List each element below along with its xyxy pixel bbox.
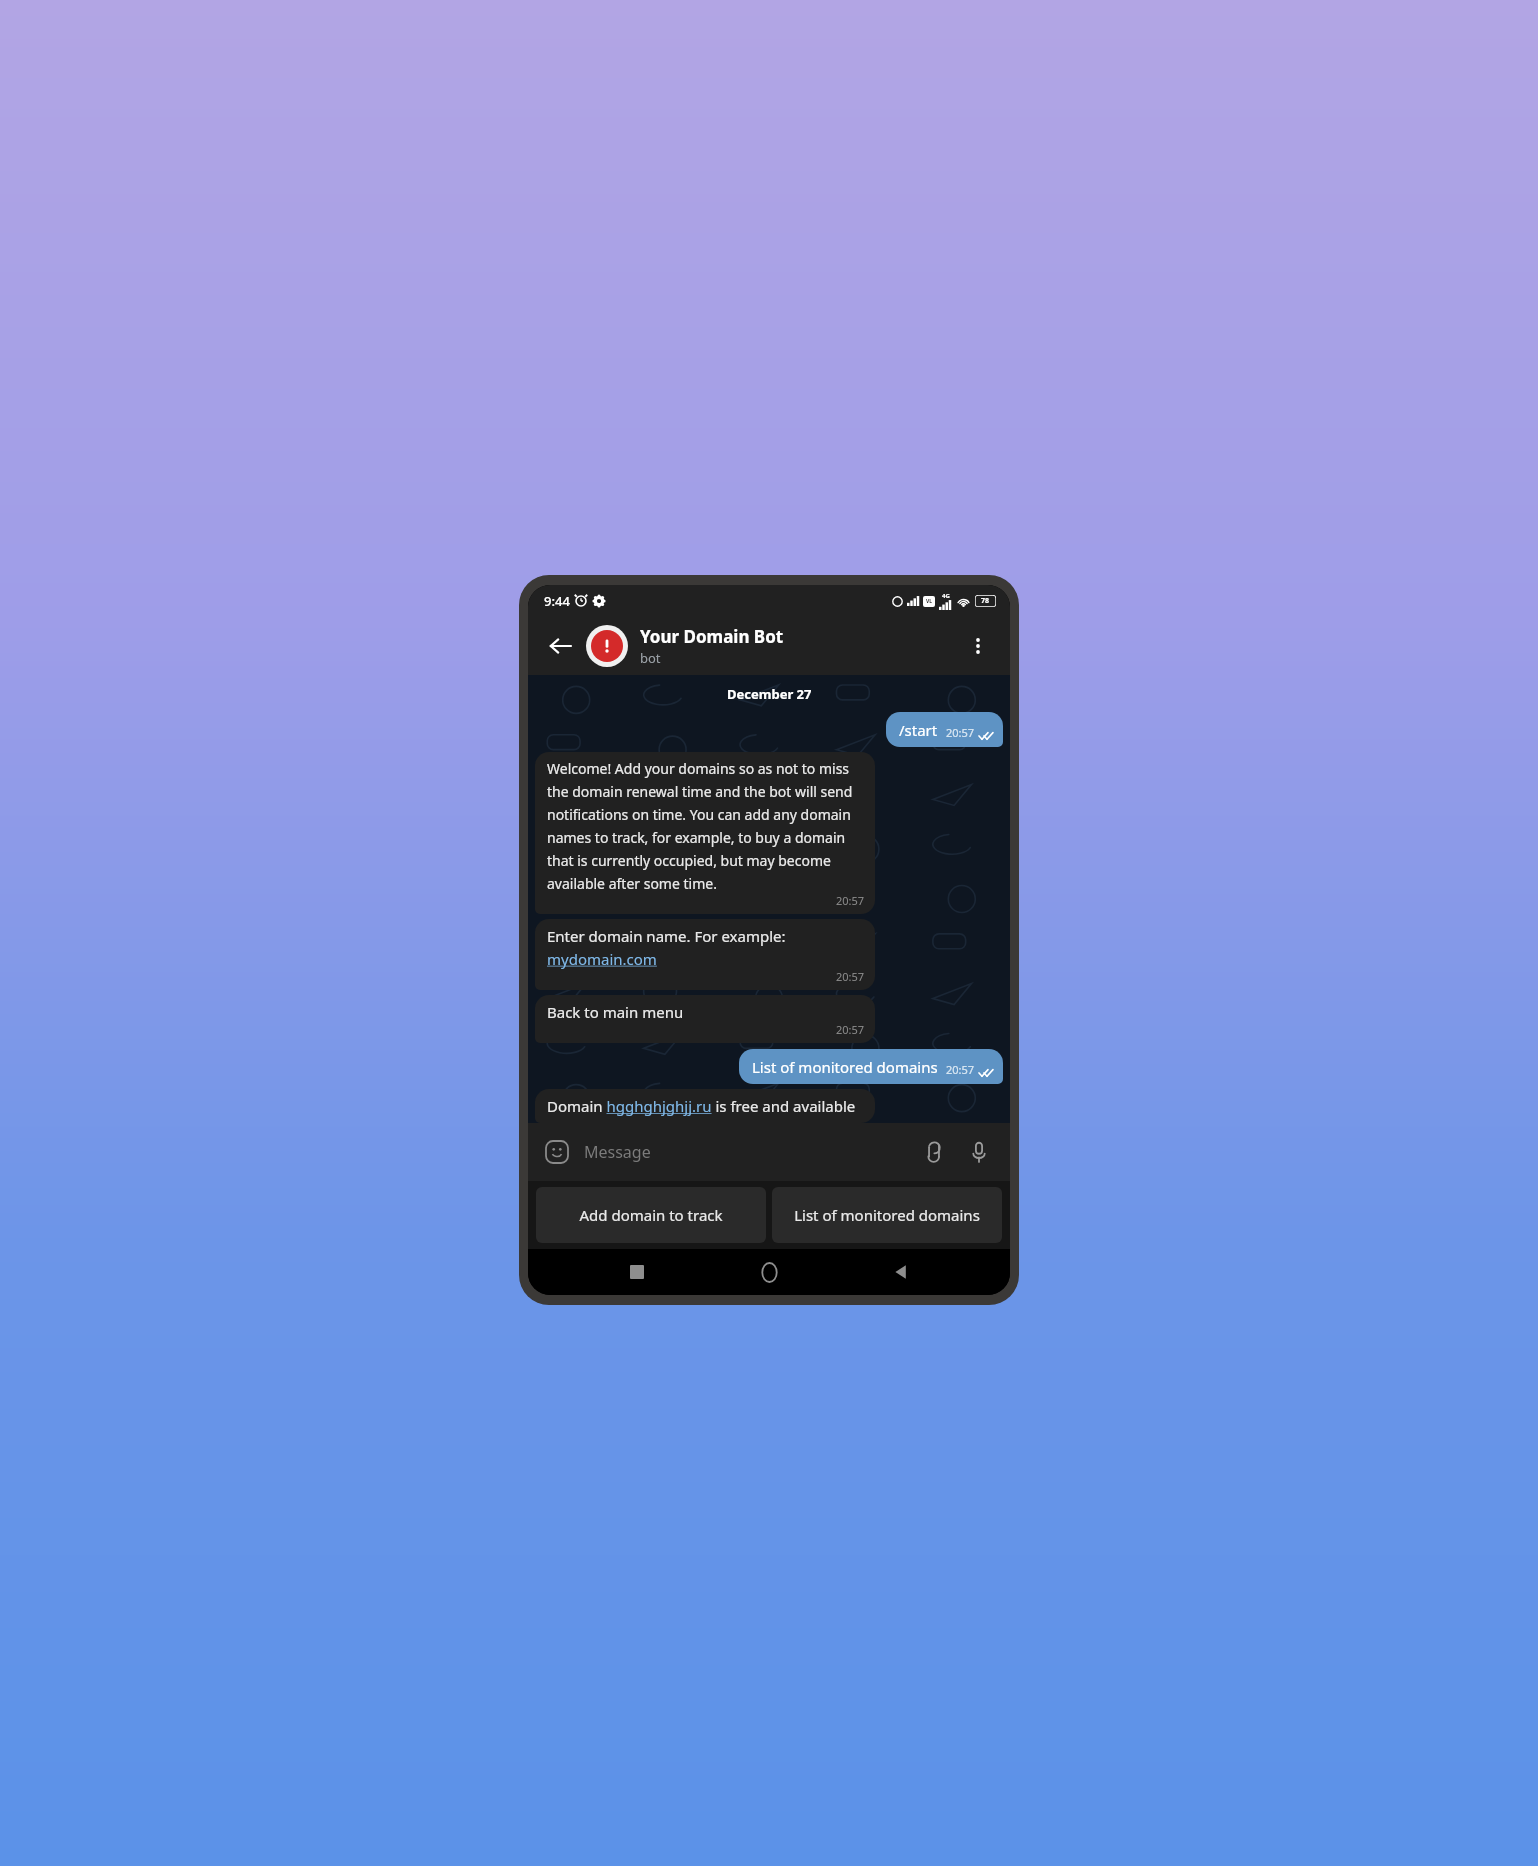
button[interactable]: More options — [958, 626, 998, 666]
button[interactable]: Stickers — [542, 1137, 572, 1167]
staticText: Enter domain name. For example: mydomain… — [547, 926, 786, 969]
staticText: Domain hgghghjghjj.ru is free and availa… — [547, 1096, 865, 1117]
button[interactable]: Home — [746, 1249, 792, 1295]
button[interactable]: Recents — [614, 1249, 660, 1295]
staticText: 20:57 — [946, 1062, 975, 1077]
button[interactable]: List of monitored domains — [772, 1187, 1002, 1243]
button[interactable]: Voice message — [962, 1135, 996, 1169]
button[interactable]: Attach — [918, 1135, 952, 1169]
staticText: 20:57 — [836, 1022, 865, 1037]
button[interactable]: Welcome! Add your domains so as not to m… — [535, 752, 875, 914]
staticText: Your Domain Bot — [640, 625, 784, 648]
staticText: List of monitored domains — [794, 1205, 980, 1225]
staticText: /start — [899, 720, 938, 740]
staticText: Message — [584, 1141, 651, 1163]
button[interactable]: Message — [584, 1141, 918, 1163]
staticText: Welcome! Add your domains so as not to m… — [547, 759, 865, 893]
staticText: 4G — [942, 592, 950, 600]
button[interactable]: Add domain to track — [536, 1187, 766, 1243]
button[interactable]: Domain hgghghjghjj.ru is free and availa… — [535, 1089, 875, 1123]
button[interactable]: Back — [540, 626, 580, 666]
staticText: 20:57 — [946, 725, 975, 740]
button[interactable]: List of monitored domains — [739, 1049, 1003, 1084]
staticText: December 27 — [727, 685, 812, 703]
button[interactable]: Back to main menu — [535, 995, 875, 1043]
staticText: 78 — [981, 596, 990, 606]
staticText: List of monitored domains — [752, 1057, 938, 1077]
button[interactable]: Back — [878, 1249, 924, 1295]
staticText: Back to main menu — [547, 1002, 684, 1022]
button[interactable]: Enter domain name. For example: mydomain… — [535, 919, 875, 990]
button[interactable]: /start — [886, 712, 1003, 747]
button[interactable]: Your Domain Bot — [640, 625, 958, 667]
staticText: 20:57 — [836, 893, 865, 908]
staticText: bot — [640, 649, 661, 667]
staticText: Add domain to track — [579, 1205, 723, 1225]
staticText: 20:57 — [836, 969, 865, 984]
staticText: VL — [926, 598, 933, 605]
staticText: 9:44 — [544, 592, 570, 610]
